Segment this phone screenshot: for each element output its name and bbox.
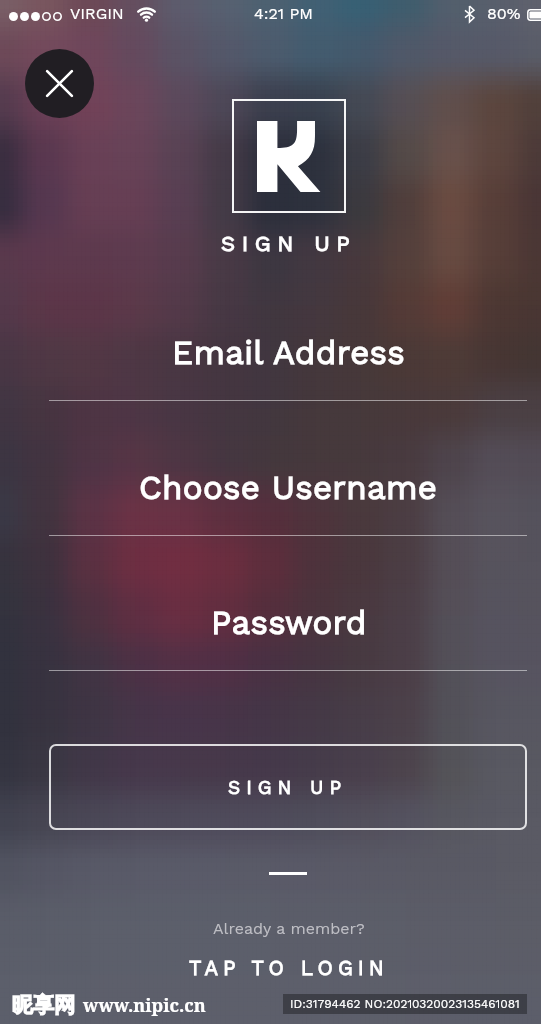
button[interactable]: SIGN UP <box>49 744 527 830</box>
staticText: TAP TO LOGIN <box>189 956 389 980</box>
staticText: Password <box>211 603 367 642</box>
staticText: 4:21 PM <box>254 4 313 23</box>
staticText: www.nipic.cn <box>83 993 206 1018</box>
staticText: Email Address <box>172 333 406 372</box>
button[interactable]: TAP TO LOGIN <box>189 956 389 980</box>
staticText: SIGN UP <box>228 776 348 798</box>
button[interactable]: Close <box>25 49 94 118</box>
staticText: ID:31794462 NO:20210320023135461081 <box>290 997 520 1011</box>
staticText: Already a member? <box>213 919 365 938</box>
staticText: Choose Username <box>139 468 438 507</box>
staticText: 80% <box>487 4 521 23</box>
staticText: SIGN UP <box>221 231 357 257</box>
staticText: 昵享网 <box>12 992 75 1018</box>
staticText: VIRGIN <box>70 4 124 23</box>
